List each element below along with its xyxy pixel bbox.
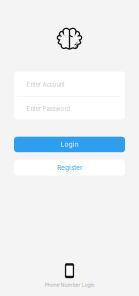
staticText: Login	[60, 141, 78, 148]
staticText: Enter Account	[26, 81, 64, 88]
staticText: Enter Password	[26, 105, 70, 112]
staticText: Phone Number Login	[44, 282, 94, 288]
button[interactable]: Phone Number Login	[36, 263, 102, 288]
staticText: Register	[57, 164, 82, 171]
button[interactable]: Register	[0, 160, 139, 176]
button[interactable]: Login	[0, 137, 139, 152]
